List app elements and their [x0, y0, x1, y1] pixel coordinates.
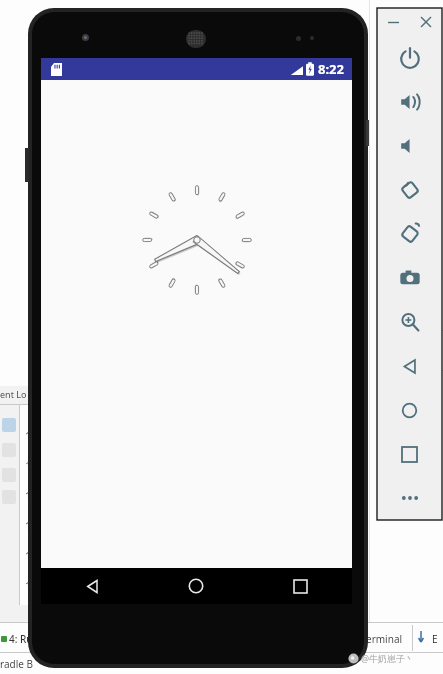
staticText: 8:22	[318, 60, 344, 78]
button[interactable]: Home	[377, 388, 442, 432]
button[interactable]: Recent apps	[248, 568, 352, 604]
button[interactable]: Back	[41, 568, 144, 604]
button[interactable]: Close	[409, 8, 442, 36]
button[interactable]: Volume down	[377, 124, 442, 168]
staticText: ent Lo	[0, 388, 27, 400]
button[interactable]: Rotate left	[377, 168, 442, 212]
staticText: radle B	[0, 657, 34, 671]
button[interactable]: Volume up	[377, 80, 442, 124]
staticText: 4: Ru	[9, 632, 33, 646]
staticText: 16	[25, 488, 38, 503]
button[interactable]: Take screenshot	[377, 256, 442, 300]
staticText: @牛奶崽子丶	[361, 652, 415, 664]
staticText: 16	[25, 428, 38, 443]
staticText: 16	[25, 548, 38, 563]
staticText: R	[436, 337, 443, 351]
staticText: E	[432, 632, 438, 646]
staticText: 16	[25, 458, 38, 473]
button[interactable]: Back	[377, 344, 442, 388]
button[interactable]: Home	[144, 568, 248, 604]
button[interactable]: More	[377, 476, 442, 520]
button[interactable]: Recent apps	[377, 432, 442, 476]
staticText: erminal	[366, 632, 403, 646]
button[interactable]: Rotate right	[377, 212, 442, 256]
button[interactable]: Minimize	[377, 8, 409, 36]
staticText: 16	[25, 578, 38, 593]
staticText: 16	[25, 518, 38, 533]
button[interactable]: Power	[377, 36, 442, 80]
button[interactable]: Zoom	[377, 300, 442, 344]
